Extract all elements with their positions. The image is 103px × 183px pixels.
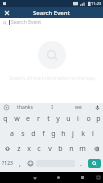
- button[interactable]: Emoji: [25, 156, 35, 171]
- button[interactable]: p: [93, 111, 103, 126]
- button[interactable]: o: [83, 111, 93, 126]
- button[interactable]: thanks: [12, 103, 38, 111]
- staticText: h: [61, 129, 66, 139]
- staticText: q: [3, 114, 8, 124]
- staticText: g: [51, 129, 56, 139]
- staticText: v: [48, 144, 52, 154]
- staticText: m: [79, 144, 86, 154]
- button[interactable]: v: [44, 141, 55, 156]
- button[interactable]: w: [11, 111, 22, 126]
- button[interactable]: c: [34, 141, 44, 156]
- staticText: Search all the information in the app: [9, 75, 95, 82]
- button[interactable]: r: [33, 111, 43, 126]
- staticText: Search Event: [33, 9, 70, 17]
- button[interactable]: Shift: [0, 141, 14, 156]
- button[interactable]: y: [53, 111, 63, 126]
- button[interactable]: Hide keyboard: [94, 172, 103, 183]
- staticText: b: [58, 144, 63, 154]
- staticText: 11:23: [91, 1, 102, 6]
- staticText: i: [77, 114, 79, 124]
- button[interactable]: Recent apps: [70, 172, 94, 183]
- button[interactable]: k: [78, 126, 88, 141]
- button[interactable]: q: [0, 111, 11, 126]
- button[interactable]: j: [68, 126, 78, 141]
- staticText: k: [81, 129, 85, 139]
- staticText: r: [37, 114, 40, 124]
- staticText: we: [75, 104, 82, 111]
- button[interactable]: .: [76, 156, 86, 171]
- button[interactable]: b: [55, 141, 66, 156]
- staticText: l: [92, 129, 94, 139]
- button[interactable]: GIF: [0, 103, 12, 111]
- button[interactable]: we: [65, 103, 92, 111]
- staticText: Search Event: [11, 19, 42, 26]
- staticText: a: [10, 129, 14, 139]
- button[interactable]: Back: [23, 172, 46, 183]
- staticText: c: [37, 144, 41, 154]
- button[interactable]: d: [28, 126, 38, 141]
- staticText: d: [31, 129, 36, 139]
- button[interactable]: Search Event: [0, 18, 103, 27]
- staticText: x: [27, 144, 31, 154]
- staticText: f: [42, 129, 45, 139]
- staticText: y: [56, 114, 60, 124]
- staticText: w: [14, 114, 20, 124]
- button[interactable]: a: [6, 126, 17, 141]
- staticText: I: [51, 104, 53, 111]
- button[interactable]: n: [66, 141, 77, 156]
- button[interactable]: g: [48, 126, 58, 141]
- staticText: ,: [19, 159, 21, 169]
- staticText: j: [72, 129, 74, 139]
- button[interactable]: l: [88, 126, 98, 141]
- button[interactable]: z: [14, 141, 24, 156]
- button[interactable]: x: [24, 141, 34, 156]
- button[interactable]: u: [63, 111, 73, 126]
- staticText: ?123: [2, 160, 13, 167]
- staticText: n: [69, 144, 74, 154]
- button[interactable]: ,: [15, 156, 25, 171]
- button[interactable]: Backspace: [88, 141, 103, 156]
- button[interactable]: Voice input: [92, 103, 103, 111]
- button[interactable]: Close: [2, 8, 11, 17]
- staticText: u: [66, 114, 71, 124]
- staticText: .: [80, 159, 82, 169]
- staticText: e: [26, 114, 30, 124]
- button[interactable]: ?123: [0, 156, 15, 171]
- staticText: t: [47, 114, 50, 124]
- staticText: s: [21, 129, 25, 139]
- button[interactable]: Search: [88, 159, 101, 168]
- staticText: z: [17, 144, 21, 154]
- staticText: thanks: [17, 104, 33, 111]
- button[interactable]: s: [17, 126, 28, 141]
- button[interactable]: f: [38, 126, 48, 141]
- button[interactable]: e: [22, 111, 33, 126]
- button[interactable]: i: [73, 111, 83, 126]
- button[interactable]: m: [77, 141, 88, 156]
- staticText: o: [86, 114, 91, 124]
- staticText: p: [96, 114, 101, 124]
- button[interactable]: t: [43, 111, 53, 126]
- button[interactable]: I: [38, 103, 65, 111]
- button[interactable]: Home: [46, 172, 70, 183]
- button[interactable]: h: [58, 126, 68, 141]
